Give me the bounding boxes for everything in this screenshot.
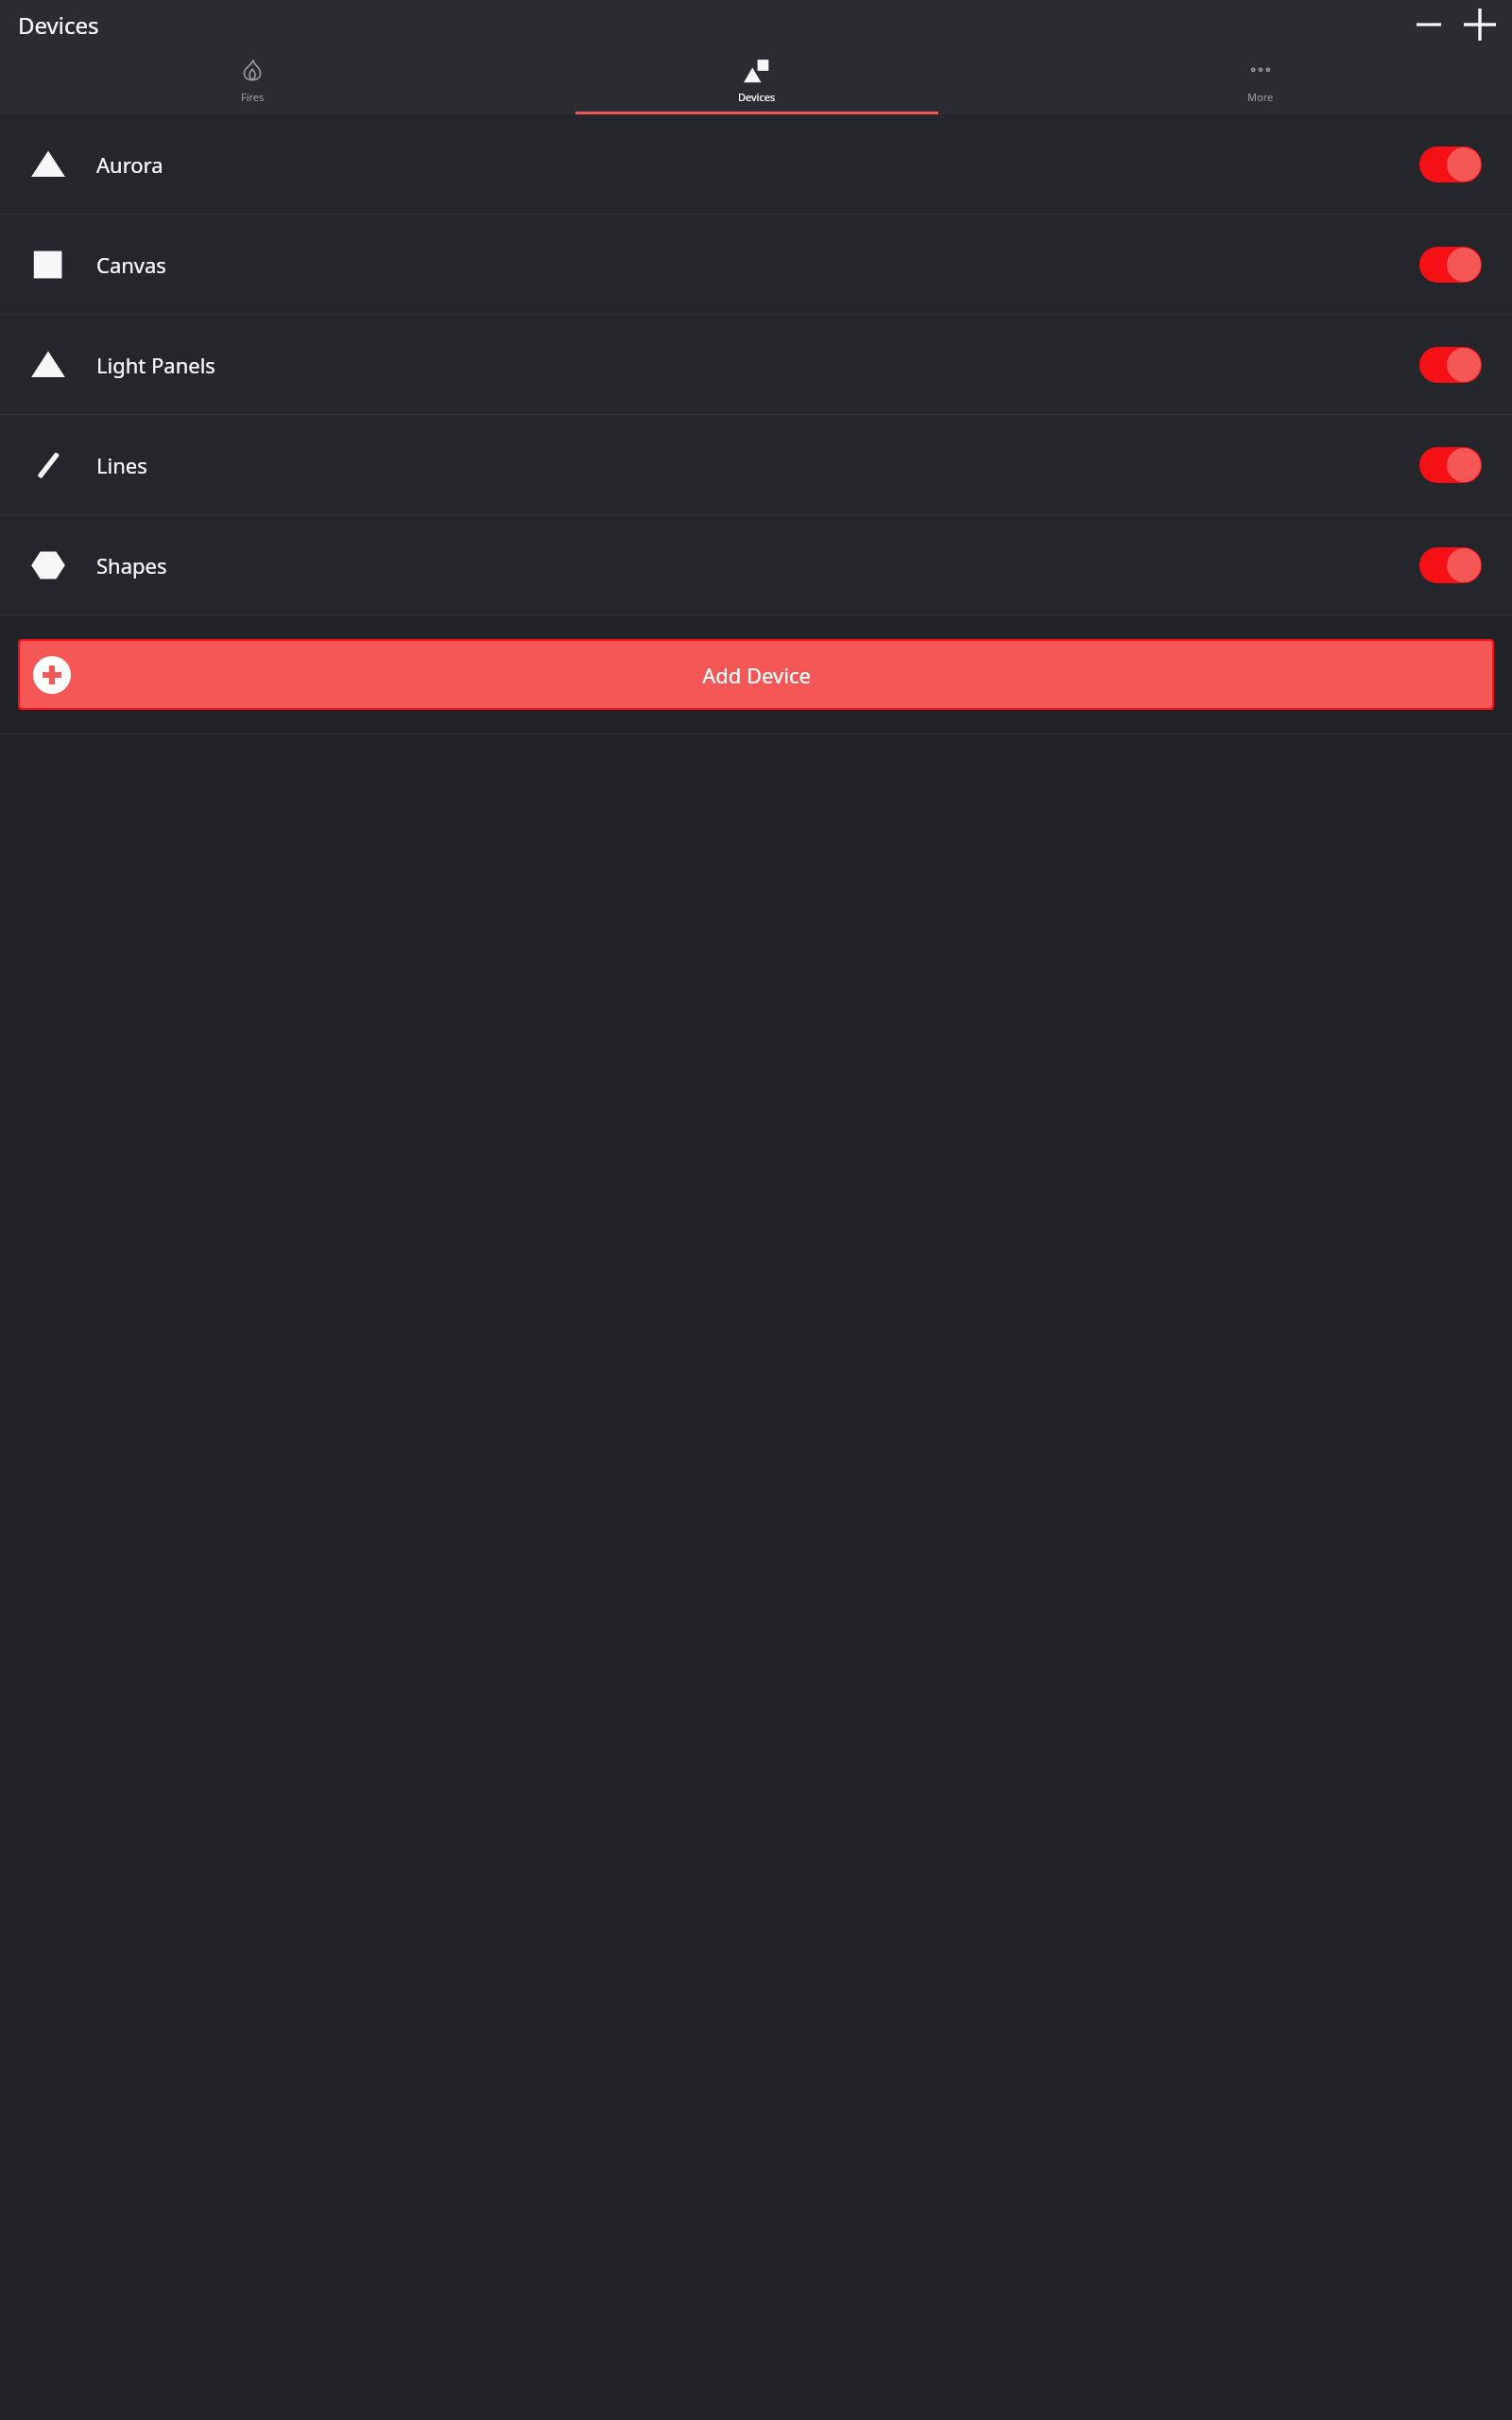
staticText: Shapes — [96, 551, 1419, 579]
staticText: Lines — [96, 451, 1419, 479]
button[interactable]: Fires — [0, 49, 505, 112]
staticText: Devices — [18, 9, 99, 41]
staticText: Aurora — [96, 150, 1419, 179]
button[interactable]: Devices — [505, 49, 1008, 112]
button[interactable]: Remove — [1408, 4, 1450, 45]
button[interactable]: Power toggle, on — [1419, 447, 1482, 483]
button[interactable]: Aurora — [0, 114, 1512, 214]
button[interactable]: Power toggle, on — [1419, 147, 1482, 182]
button[interactable]: Add — [1459, 4, 1501, 45]
button[interactable]: Power toggle, on — [1419, 547, 1482, 583]
button[interactable]: Add Device — [20, 641, 1492, 708]
button[interactable]: Shapes — [0, 515, 1512, 614]
staticText: Light Panels — [96, 351, 1419, 379]
staticText: Add Device — [702, 661, 811, 689]
button[interactable]: Light Panels — [0, 315, 1512, 414]
button[interactable]: Power toggle, on — [1419, 347, 1482, 383]
staticText: Canvas — [96, 251, 1419, 279]
button[interactable]: Power toggle, on — [1419, 247, 1482, 283]
staticText: Devices — [738, 90, 776, 104]
button[interactable]: More — [1008, 49, 1512, 112]
staticText: More — [1247, 90, 1274, 104]
button[interactable]: Canvas — [0, 215, 1512, 314]
staticText: Fires — [241, 90, 265, 104]
button[interactable]: Lines — [0, 415, 1512, 514]
